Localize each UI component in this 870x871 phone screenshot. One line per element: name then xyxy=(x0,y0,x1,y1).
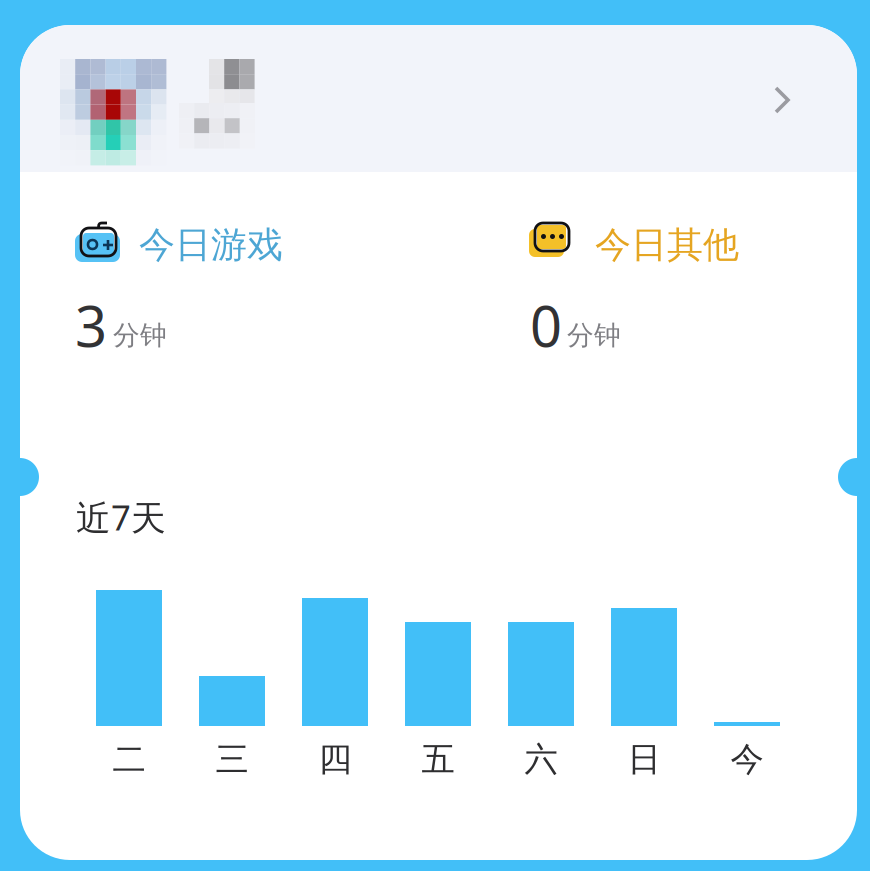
staticText: 近7天 xyxy=(76,494,166,540)
staticText: 二 xyxy=(112,739,145,780)
staticText: 日 xyxy=(627,739,660,780)
staticText: 三 xyxy=(215,739,248,780)
staticText: 分钟 xyxy=(113,319,167,352)
staticText: 今日游戏 xyxy=(139,223,283,267)
staticText: 四 xyxy=(318,739,351,780)
staticText: 分钟 xyxy=(567,319,621,352)
staticText: 今 xyxy=(730,739,763,780)
button[interactable]: 账号信息 xyxy=(20,25,857,172)
staticText: 0 xyxy=(530,288,562,362)
staticText: 今日其他 xyxy=(595,223,739,267)
staticText: 六 xyxy=(524,739,557,780)
staticText: 五 xyxy=(421,739,454,780)
staticText: 3 xyxy=(75,288,107,362)
